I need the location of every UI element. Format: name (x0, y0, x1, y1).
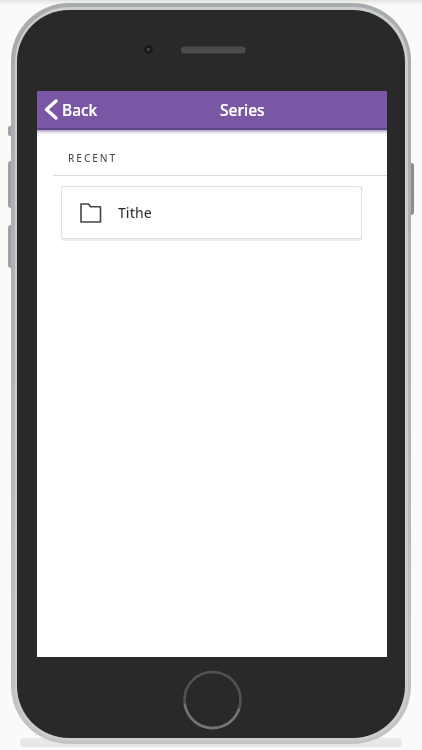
button[interactable]: Back (37, 91, 108, 128)
staticText: Series (220, 99, 265, 120)
button[interactable]: Tithe (62, 187, 361, 238)
staticText: Tithe (118, 203, 152, 222)
staticText: RECENT (68, 151, 118, 165)
staticText: Back (62, 99, 98, 120)
